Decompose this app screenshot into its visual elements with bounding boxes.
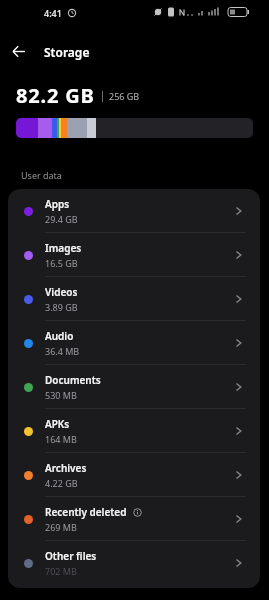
button[interactable]: Apps — [8, 189, 260, 233]
button[interactable]: Archives — [8, 453, 260, 497]
staticText: 4:41 — [44, 7, 62, 19]
staticText: 3.89 GB — [45, 301, 78, 313]
button[interactable] — [12, 45, 26, 58]
staticText: 269 MB — [45, 521, 77, 533]
button[interactable]: Videos — [8, 277, 260, 321]
button[interactable]: Other files — [8, 541, 260, 585]
staticText: 164 MB — [45, 433, 77, 445]
button[interactable]: APKs — [8, 409, 260, 453]
staticText: 82.2 GB — [16, 82, 95, 109]
staticText: Storage — [44, 44, 90, 60]
staticText: 4.22 GB — [45, 477, 78, 489]
staticText: 29.4 GB — [45, 213, 78, 225]
staticText: Videos — [45, 285, 78, 299]
staticText: Documents — [45, 373, 101, 387]
staticText: Apps — [45, 197, 70, 211]
staticText: Other files — [45, 549, 97, 563]
staticText: Archives — [45, 461, 87, 475]
staticText: APKs — [45, 417, 70, 431]
button[interactable]: Audio — [8, 321, 260, 365]
staticText: Images — [45, 241, 82, 255]
staticText: Audio — [45, 329, 74, 343]
staticText: 36.4 MB — [45, 345, 80, 357]
staticText: User data — [21, 169, 62, 181]
staticText: 530 MB — [45, 389, 77, 401]
staticText: 702 MB — [45, 565, 77, 577]
button[interactable]: Images — [8, 233, 260, 277]
button[interactable]: Recently deleted — [8, 497, 260, 541]
staticText: 16.5 GB — [45, 257, 78, 269]
button[interactable]: Documents — [8, 365, 260, 409]
staticText: 256 GB — [109, 90, 140, 102]
staticText: Recently deleted — [45, 505, 127, 519]
